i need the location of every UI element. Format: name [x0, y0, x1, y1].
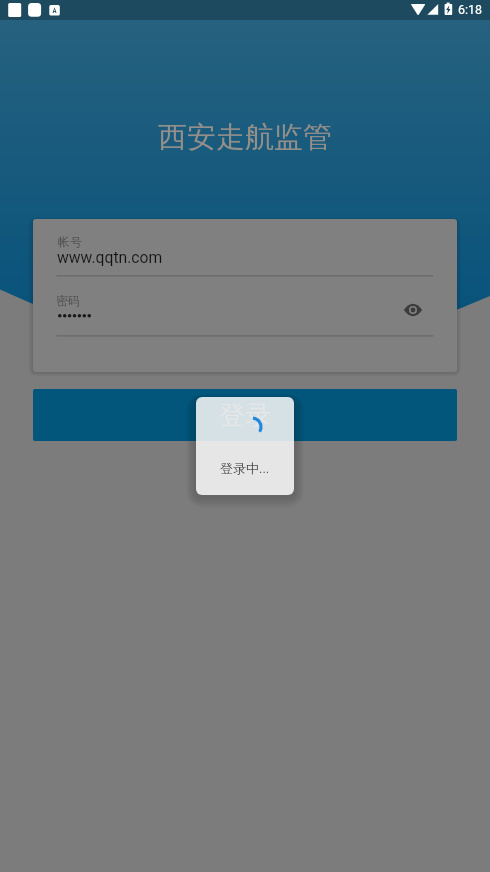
staticText: 6:18 — [458, 2, 483, 17]
button[interactable]: Show password — [397, 294, 429, 326]
staticText: 帐号 — [58, 234, 82, 249]
staticText: 西安走航监管 — [158, 119, 332, 156]
staticText: www.qqtn.com — [57, 248, 163, 266]
button[interactable]: 登录 — [33, 389, 457, 441]
staticText: 密码 — [56, 293, 80, 308]
staticText: 登录 — [219, 399, 271, 432]
staticText: 登录中... — [220, 460, 270, 476]
